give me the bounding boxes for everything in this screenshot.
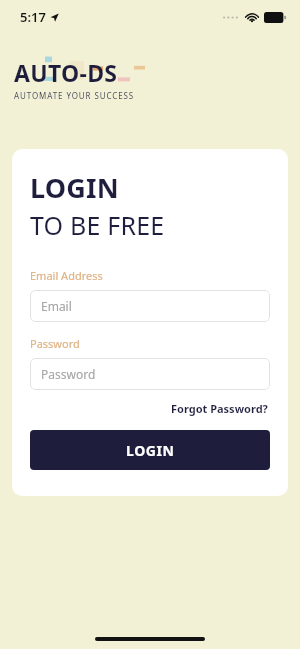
button[interactable]: Forgot Password? [169,399,270,418]
staticText: AUTO-DS [14,57,118,88]
button[interactable]: LOGIN [30,430,270,470]
staticText: AUTOMATE YOUR SUCCESS [14,90,135,101]
button[interactable]: Password [30,358,270,390]
staticText: Email Address [30,268,103,283]
staticText: Password [41,366,96,382]
staticText: LOGIN [126,441,175,460]
staticText: Email [41,298,72,314]
button[interactable]: Email [30,290,270,322]
staticText: Forgot Password? [171,401,268,416]
staticText: LOGIN [30,169,119,206]
staticText: 5:17 [20,8,46,26]
staticText: TO BE FREE [30,208,165,242]
staticText: Password [30,336,80,351]
